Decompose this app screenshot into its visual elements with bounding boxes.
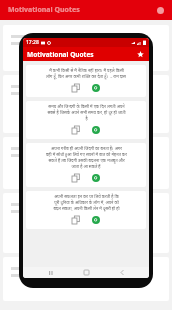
staticText: लोग हूँ, फिर अगर कभी शक्ति कर देता हूँ। … <box>46 74 126 80</box>
button[interactable]: अपना गरीब ही अपनी जिंदगी का बनता है। अगर <box>26 143 146 187</box>
staticText: Motivational Quotes <box>27 50 94 59</box>
staticText: सबसे है जिसके अपने सभी समय कर, हो दूर हो… <box>47 110 126 116</box>
staticText: अपनी सफलता इन कर पर लिये करती है कि <box>54 194 119 200</box>
staticText: जाता है आ सकते हैं <box>71 164 101 170</box>
button[interactable]: Copy <box>70 124 82 136</box>
staticText: वही में सोचो हुआ लिये गए सपनों में बात क… <box>46 152 127 158</box>
button[interactable]: Share on WhatsApp <box>90 214 102 226</box>
staticText: है <box>85 116 88 122</box>
button[interactable]: Home <box>78 267 94 278</box>
button[interactable]: Copy <box>70 172 82 184</box>
staticText: Motivational Quotes <box>8 5 80 15</box>
button[interactable]: Back <box>114 267 130 278</box>
staticText: पूरी दुनिया के अधिकार के लोग में, अपने क… <box>54 200 119 206</box>
button[interactable]: Share on WhatsApp <box>90 124 102 136</box>
button[interactable]: Share on WhatsApp <box>90 82 102 94</box>
button[interactable]: Copy <box>70 214 82 226</box>
staticText: बदल सकता, अपनी किसी लेन में दूसरी हो हो <box>53 206 120 212</box>
button[interactable]: समय और जिन्दगी के किसी में एक दिन लगती अ… <box>26 101 146 139</box>
button[interactable]: मैं कभी किसी से मैं नैतिक नहीं हारा। मैं… <box>26 65 146 97</box>
staticText: 17:28 <box>26 39 39 46</box>
button[interactable]: अपनी सफलता इन कर पर लिये करती है कि <box>26 191 146 229</box>
staticText: अपना गरीब ही अपनी जिंदगी का बनता है। अगर <box>51 146 122 152</box>
staticText: सकते हैं तब जिंदगी उसकी बदलना एक मजबूत औ… <box>48 158 125 164</box>
button[interactable]: Share on WhatsApp <box>90 172 102 184</box>
button[interactable]: Favourites <box>135 49 146 60</box>
staticText: मैं कभी किसी से मैं नैतिक नहीं हारा। मैं… <box>49 68 124 74</box>
button[interactable]: Recents <box>43 267 59 278</box>
button[interactable]: Copy <box>70 82 82 94</box>
staticText: समय और जिन्दगी के किसी में एक दिन लगती अ… <box>48 104 125 110</box>
